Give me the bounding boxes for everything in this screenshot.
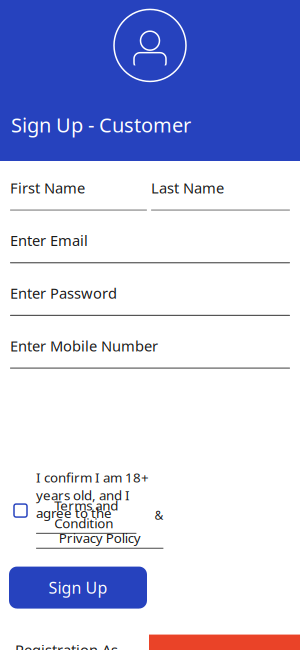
staticText: Enter Mobile Number (10, 336, 158, 355)
button[interactable]: Privacy Policy (36, 529, 163, 549)
staticText: Last Name (151, 178, 224, 197)
staticText: Privacy Policy (59, 529, 141, 547)
staticText: Sign Up - Customer (11, 111, 191, 138)
button[interactable]: Agree to terms (14, 504, 27, 517)
staticText: Enter Password (10, 283, 117, 303)
button[interactable]: Sign Up (9, 567, 147, 609)
staticText: Sign Up (48, 577, 107, 598)
staticText: First Name (10, 178, 85, 197)
staticText: Enter Email (10, 231, 88, 250)
button[interactable]: Terms and Condition (36, 496, 136, 534)
staticText: & (154, 507, 163, 523)
staticText: Registration As Expert? (15, 640, 118, 650)
staticText: I confirm I am 18+ years old, and I agre… (36, 468, 149, 522)
staticText: Terms and Condition (54, 496, 118, 532)
